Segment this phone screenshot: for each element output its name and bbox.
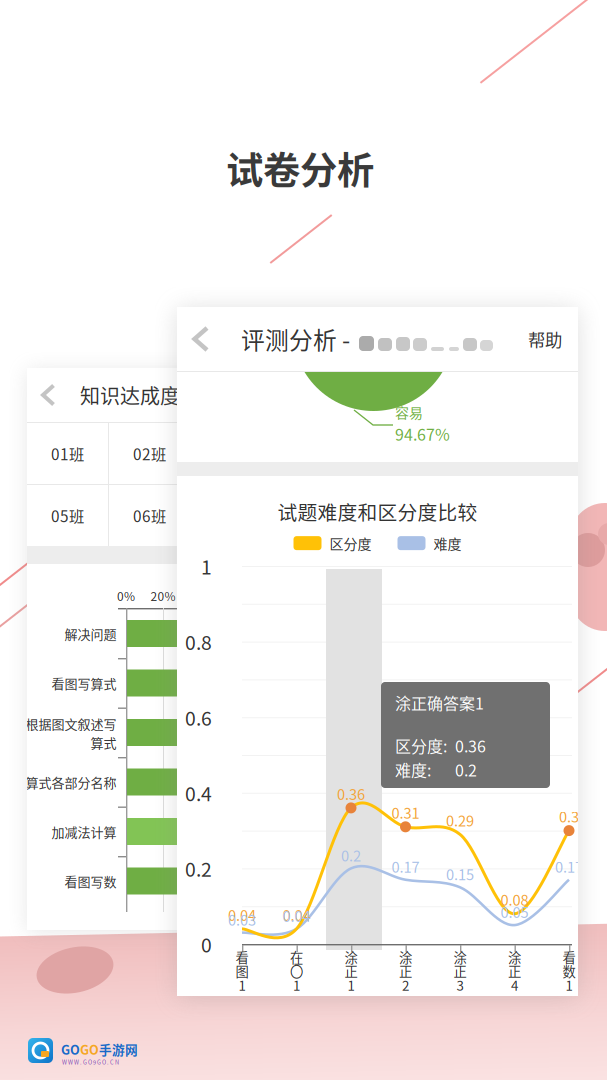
staticText: 涂正确答案1 — [395, 691, 484, 714]
staticText: 涂 — [453, 947, 466, 967]
staticText: 0 — [201, 930, 212, 958]
button[interactable]: 02班 — [109, 423, 190, 484]
staticText: 试题难度和区分度比较 — [277, 497, 477, 526]
staticText: 区分度 — [329, 533, 371, 553]
staticText: 0.15 — [446, 863, 474, 884]
staticText: 难度 — [433, 533, 461, 553]
button[interactable]: 08班 — [273, 485, 354, 546]
staticText: 看 — [235, 947, 248, 967]
staticText: 帮助 — [528, 326, 562, 352]
staticText: 0.31 — [391, 802, 419, 823]
staticText: 0.04 — [282, 905, 310, 926]
staticText: 手游网 — [99, 1040, 138, 1058]
button[interactable]: 06班 — [109, 485, 190, 546]
staticText: 正 — [344, 961, 357, 981]
staticText: 图 — [235, 961, 248, 981]
staticText: 试卷分析 — [226, 141, 374, 195]
button[interactable]: 帮助 — [528, 326, 578, 352]
staticText: 03班 — [215, 442, 248, 465]
staticText: 1 — [238, 975, 245, 995]
button[interactable]: Back — [177, 307, 225, 371]
staticText: 20% — [150, 587, 175, 604]
staticText: 3 — [456, 975, 463, 995]
staticText: 涂 — [508, 947, 521, 967]
staticText: 根据图文叙述写 算式 — [25, 714, 116, 752]
staticText: 正 — [508, 961, 521, 981]
staticText: 加减法计算 — [51, 822, 116, 841]
staticText: W W W . G O 9 G O . C N — [62, 1058, 119, 1066]
button[interactable]: 04班 — [273, 423, 354, 484]
staticText: 正 — [453, 961, 466, 981]
staticText: 涂 — [399, 947, 412, 967]
staticText: 0.17 — [391, 856, 419, 877]
staticText: 在 — [290, 947, 303, 967]
staticText: 0.04 — [282, 904, 310, 925]
staticText: 容易 — [395, 402, 423, 422]
staticText: 0% — [117, 587, 135, 604]
staticText: 难度: 0.2 — [395, 758, 477, 781]
staticText: 0.29 — [446, 809, 474, 831]
staticText: 01班 — [51, 442, 84, 465]
staticText: 0.8 — [185, 628, 212, 656]
button[interactable]: 01班 — [27, 423, 108, 484]
staticText: 1 — [293, 975, 300, 995]
staticText: 〇 — [290, 961, 303, 981]
staticText: 0.4 — [185, 779, 212, 807]
staticText: 02班 — [133, 442, 166, 465]
staticText: 区分度: 0.36 — [395, 734, 486, 757]
staticText: 数 — [562, 961, 575, 981]
staticText: 算式各部分名称 — [25, 772, 116, 791]
staticText: 1 — [347, 975, 354, 995]
staticText: GO — [80, 1040, 99, 1058]
staticText: 看图写数 — [64, 871, 116, 890]
staticText: 0.04 — [228, 904, 256, 925]
staticText: 08班 — [297, 504, 330, 527]
staticText: 看图写算式 — [51, 673, 116, 692]
staticText: 看 — [562, 947, 575, 967]
staticText: 05班 — [51, 504, 84, 527]
button[interactable]: 03班 — [191, 423, 272, 484]
staticText: GO — [61, 1040, 80, 1058]
staticText: 04班 — [297, 442, 330, 465]
staticText: 0.36 — [337, 783, 365, 804]
staticText: 解决问题 — [64, 624, 116, 643]
staticText: 0.17 — [555, 856, 583, 877]
button[interactable]: Back — [27, 368, 70, 422]
staticText: 正 — [399, 961, 412, 981]
staticText: 1 — [201, 552, 212, 580]
staticText: 涂 — [344, 947, 357, 967]
staticText: 0.05 — [500, 901, 528, 922]
staticText: 知识达成度 — [80, 380, 180, 409]
staticText: 2 — [402, 975, 409, 995]
staticText: 0.08 — [500, 889, 528, 910]
staticText: 94.67% — [395, 422, 450, 445]
staticText: 06班 — [133, 504, 166, 527]
staticText: 0.6 — [185, 703, 212, 731]
staticText: 1 — [565, 975, 572, 995]
staticText: 0.2 — [341, 844, 361, 866]
staticText: 0.2 — [185, 854, 212, 882]
staticText: 0.03 — [228, 909, 256, 930]
button[interactable]: 05班 — [27, 485, 108, 546]
staticText: 评测分析 - — [241, 322, 350, 356]
staticText: 4 — [511, 975, 518, 995]
staticText: 0.3 — [559, 806, 579, 827]
